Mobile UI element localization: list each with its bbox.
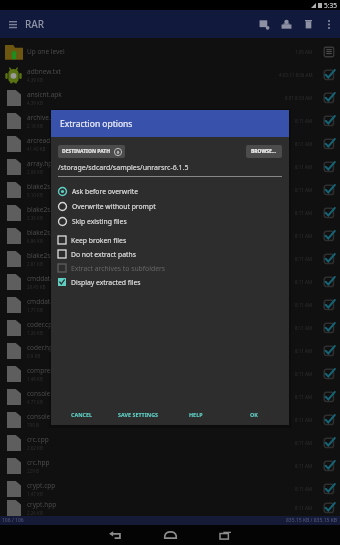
button[interactable]: Select crypt.cpp <box>318 478 340 500</box>
button[interactable]: More options <box>319 10 339 38</box>
button[interactable]: Select cmddata.cpp <box>318 271 340 293</box>
button[interactable]: Select blake2sp.cpp <box>318 248 340 270</box>
button[interactable]: crypt.hpp <box>0 500 340 516</box>
button[interactable]: archive.cpp <box>0 109 340 132</box>
button[interactable]: Select cmddata.hpp <box>318 294 340 316</box>
staticText: 8:11 AM <box>295 394 313 400</box>
button[interactable]: array.hpp <box>0 155 340 178</box>
staticText: 8:11 AM <box>295 164 313 170</box>
button[interactable]: Do not extract paths <box>58 247 282 261</box>
button[interactable]: Extract archives to subfolders <box>58 261 282 275</box>
staticText: 4:03:11 8:06 AM <box>279 72 313 78</box>
button[interactable]: Select blake2s_sse.cpp <box>318 225 340 247</box>
button[interactable]: Skip existing files <box>58 214 282 229</box>
button[interactable]: console.cpp <box>0 385 340 408</box>
button[interactable]: Navigation menu <box>0 10 25 38</box>
button[interactable]: crc.cpp <box>0 431 340 454</box>
button[interactable]: DESTINATION PATH <box>58 145 125 158</box>
button[interactable]: Display extracted files <box>58 275 282 289</box>
button[interactable]: coder.hpp <box>0 339 340 362</box>
button[interactable]: blake2s.cpp <box>0 178 340 201</box>
staticText: /storage/sdcard/samples/unrarsrc-6.1.5 <box>58 163 189 173</box>
staticText: 8:01 8:53 AM <box>285 95 313 101</box>
staticText: 5.10 KB <box>27 192 43 198</box>
staticText: 8:11 AM <box>295 325 313 331</box>
staticText: 8:11 AM <box>295 440 313 446</box>
staticText: cmddata.hpp <box>27 297 68 306</box>
button[interactable]: Ask before overwrite <box>58 184 282 199</box>
button[interactable]: Select blake2s.hpp <box>318 202 340 224</box>
staticText: blake2s_sse.cpp <box>27 228 76 237</box>
button[interactable]: Select console.cpp <box>318 386 340 408</box>
staticText: 229 B <box>27 468 39 474</box>
button[interactable]: Overwrite without prompt <box>58 199 282 214</box>
button[interactable]: cmddata.cpp <box>0 270 340 293</box>
button[interactable]: OK <box>225 404 283 424</box>
staticText: 1.48 KB <box>27 376 43 382</box>
button[interactable]: Up one level <box>0 40 340 63</box>
staticText: 8:11 AM <box>295 486 313 492</box>
button[interactable]: CANCEL <box>53 404 110 424</box>
button[interactable]: Select ansicnt.apk <box>318 87 340 109</box>
button[interactable]: Select crc.hpp <box>318 455 340 477</box>
button[interactable]: blake2sp.cpp <box>0 247 340 270</box>
staticText: 2.62 KB <box>27 445 43 451</box>
button[interactable]: compress.hpp <box>0 362 340 385</box>
button[interactable]: console.hpp <box>0 408 340 431</box>
button[interactable]: crypt.cpp <box>0 477 340 500</box>
button[interactable]: Select crc.cpp <box>318 432 340 454</box>
staticText: 8:11 AM <box>295 256 313 262</box>
button[interactable]: adbnew.txt <box>0 63 340 86</box>
button[interactable]: Select coder.hpp <box>318 340 340 362</box>
button[interactable]: ansicnt.apk <box>0 86 340 109</box>
staticText: 0.9 KB <box>27 353 41 359</box>
button[interactable]: Select coder.cpp <box>318 317 340 339</box>
staticText: 5:35 <box>324 1 337 10</box>
staticText: Extraction options <box>60 118 133 130</box>
staticText: 1.26 KB <box>27 330 43 336</box>
staticText: 2.18 KB <box>27 123 43 129</box>
button[interactable]: HELP <box>167 404 225 424</box>
button[interactable]: Select blake2s.cpp <box>318 179 340 201</box>
staticText: 2.81 KB <box>27 261 43 267</box>
button[interactable]: coder.cpp <box>0 316 340 339</box>
staticText: adbnew.txt <box>27 67 61 76</box>
button[interactable]: Keep broken files <box>58 233 282 247</box>
button[interactable]: SAVE SETTINGS <box>110 404 167 424</box>
button[interactable]: Select archive.cpp <box>318 110 340 132</box>
button[interactable]: Extract <box>275 10 297 38</box>
staticText: 106 / 106 <box>2 517 24 524</box>
button[interactable]: Recent apps <box>198 525 253 545</box>
button[interactable]: Select Up one level <box>318 41 340 63</box>
button[interactable]: Select crypt.hpp <box>318 500 340 516</box>
button[interactable]: Select compress.hpp <box>318 363 340 385</box>
button[interactable]: blake2s_sse.cpp <box>0 224 340 247</box>
button[interactable]: Home <box>143 525 198 545</box>
staticText: 2.26 KB <box>27 510 43 516</box>
button[interactable]: crc.hpp <box>0 454 340 477</box>
button[interactable]: Find <box>253 10 275 38</box>
button[interactable]: Delete <box>297 10 319 38</box>
staticText: 835.15 KB / 835.15 KB <box>286 517 338 524</box>
button[interactable]: Select array.hpp <box>318 156 340 178</box>
button[interactable]: BROWSE... <box>246 145 282 158</box>
staticText: Do not extract paths <box>71 250 136 259</box>
staticText: 1:05 AM <box>295 49 313 55</box>
button[interactable]: cmddata.hpp <box>0 293 340 316</box>
button[interactable]: arcread.cpp <box>0 132 340 155</box>
button[interactable]: Select console.hpp <box>318 409 340 431</box>
button[interactable]: blake2s.hpp <box>0 201 340 224</box>
staticText: Display extracted files <box>71 278 141 287</box>
staticText: OK <box>250 411 258 418</box>
button[interactable]: Back <box>88 525 143 545</box>
button[interactable]: Select arcread.cpp <box>318 133 340 155</box>
staticText: archive.cpp <box>27 113 62 122</box>
staticText: compress.hpp <box>27 366 71 375</box>
staticText: Skip existing files <box>72 217 127 226</box>
staticText: 8:11 AM <box>295 371 313 377</box>
staticText: 4.77 KB <box>27 399 43 405</box>
staticText: cmddata.cpp <box>27 274 67 283</box>
staticText: 6.86 KB <box>27 238 43 244</box>
staticText: 8:11 AM <box>295 187 313 193</box>
button[interactable]: Select adbnew.txt <box>318 64 340 86</box>
